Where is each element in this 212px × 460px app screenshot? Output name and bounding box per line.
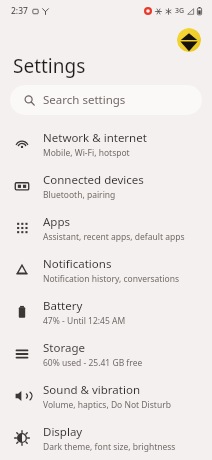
staticText: Search settings <box>43 92 126 108</box>
button[interactable]: Storage <box>0 333 212 375</box>
staticText: 60% used - 25.41 GB free <box>43 357 143 369</box>
button[interactable]: Apps <box>0 207 212 249</box>
staticText: Settings <box>13 53 86 79</box>
staticText: Display <box>43 424 83 440</box>
button[interactable]: Battery <box>0 291 212 333</box>
staticText: Storage <box>43 340 85 356</box>
staticText: Bluetooth, pairing <box>43 189 116 201</box>
staticText: Sound & vibration <box>43 382 140 398</box>
staticText: Assistant, recent apps, default apps <box>43 231 185 243</box>
staticText: 3G <box>175 6 185 16</box>
button[interactable]: Account avatar <box>177 28 201 52</box>
staticText: Connected devices <box>43 172 144 188</box>
staticText: 2:37 <box>11 5 28 17</box>
button[interactable]: Connected devices <box>0 165 212 207</box>
staticText: Notifications <box>43 256 112 272</box>
staticText: Mobile, Wi-Fi, hotspot <box>43 147 130 159</box>
staticText: Network & internet <box>43 130 147 146</box>
button[interactable]: Sound & vibration <box>0 375 212 417</box>
staticText: Volume, haptics, Do Not Disturb <box>43 399 171 411</box>
staticText: Notification history, conversations <box>43 273 180 285</box>
staticText: 47% - Until 12:45 AM <box>43 315 126 327</box>
staticText: Dark theme, font size, brightness <box>43 441 176 453</box>
button[interactable]: Network & internet <box>0 123 212 165</box>
button[interactable]: Notifications <box>0 249 212 291</box>
button[interactable]: Search settings <box>10 85 202 115</box>
staticText: Apps <box>43 214 71 230</box>
staticText: Battery <box>43 298 83 314</box>
button[interactable]: Display <box>0 417 212 459</box>
